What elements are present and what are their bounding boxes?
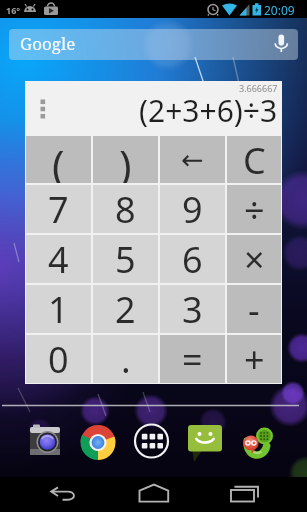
staticText: ( xyxy=(52,136,65,183)
staticText: × xyxy=(244,235,265,283)
button[interactable] xyxy=(268,29,298,60)
staticText: 0 xyxy=(48,335,69,383)
staticText: + xyxy=(244,335,265,383)
button[interactable]: C xyxy=(227,136,281,183)
button[interactable]: + xyxy=(227,335,281,383)
staticText: - xyxy=(248,285,260,333)
staticText: Google xyxy=(20,32,76,55)
button[interactable]: 6 xyxy=(160,235,225,283)
button[interactable]: ÷ xyxy=(227,185,281,233)
staticText: . xyxy=(121,335,131,383)
staticText: 16° xyxy=(6,4,21,16)
staticText: = xyxy=(182,335,203,383)
staticText: 2 xyxy=(115,285,136,333)
button[interactable] xyxy=(226,477,262,512)
staticText: 20:09 xyxy=(264,2,295,18)
button[interactable]: 8 xyxy=(93,185,158,233)
button[interactable]: ← xyxy=(160,136,225,183)
staticText: 5 xyxy=(115,235,136,283)
button[interactable]: Google xyxy=(9,29,298,60)
button[interactable] xyxy=(129,420,173,464)
button[interactable]: 4 xyxy=(26,235,91,283)
button[interactable]: 0 xyxy=(26,335,91,383)
staticText: 4 xyxy=(48,235,69,283)
button[interactable]: × xyxy=(227,235,281,283)
button[interactable]: 5 xyxy=(93,235,158,283)
staticText: 8 xyxy=(115,185,136,233)
button[interactable] xyxy=(237,422,281,466)
button[interactable]: 2 xyxy=(93,285,158,333)
button[interactable] xyxy=(183,421,227,465)
button[interactable]: ( xyxy=(26,136,91,183)
button[interactable]: 9 xyxy=(160,185,225,233)
button[interactable] xyxy=(76,421,120,465)
button[interactable]: - xyxy=(227,285,281,333)
staticText: C xyxy=(243,136,266,183)
button[interactable]: . xyxy=(93,335,158,383)
staticText: 6 xyxy=(182,235,203,283)
button[interactable] xyxy=(136,477,172,512)
staticText: 3.666667 xyxy=(239,82,278,94)
staticText: 3 xyxy=(182,285,203,333)
button[interactable] xyxy=(45,477,81,512)
button[interactable]: = xyxy=(160,335,225,383)
button[interactable]: 1 xyxy=(26,285,91,333)
staticText: 1 xyxy=(48,285,69,333)
staticText: (2+3+6)÷3 xyxy=(139,90,278,131)
staticText: 7 xyxy=(48,185,69,233)
button[interactable]: 7 xyxy=(26,185,91,233)
staticText: ÷ xyxy=(244,185,265,233)
staticText: ← xyxy=(181,144,204,175)
button[interactable]: ) xyxy=(93,136,158,183)
button[interactable]: 3 xyxy=(160,285,225,333)
staticText: 9 xyxy=(182,185,203,233)
staticText: ) xyxy=(119,136,132,183)
button[interactable] xyxy=(23,422,67,466)
